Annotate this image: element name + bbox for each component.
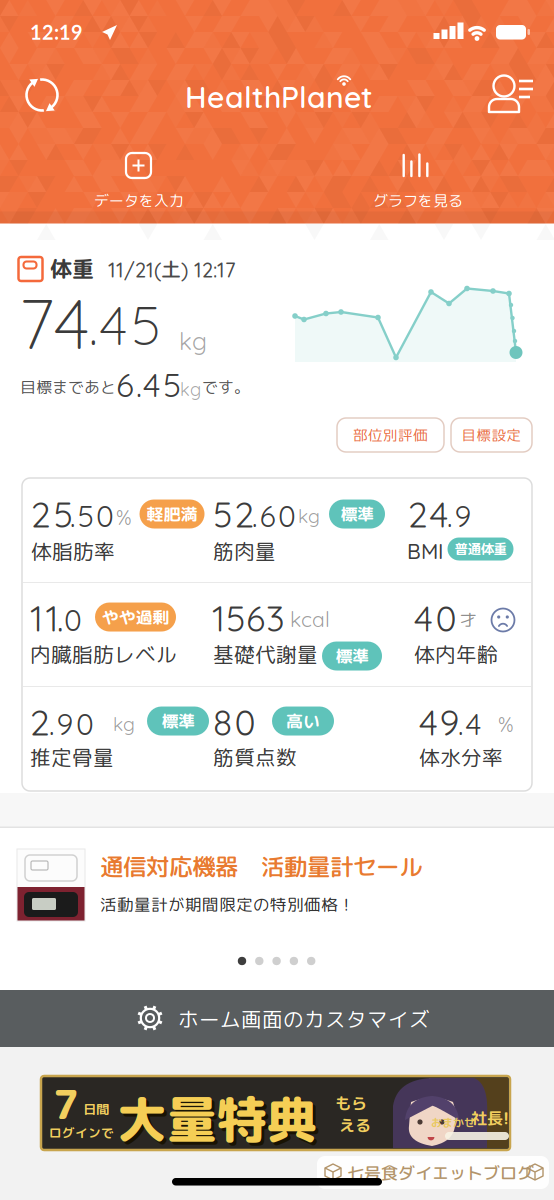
staticText: 推定骨量 bbox=[30, 743, 114, 772]
staticText: 11/21(土) 12:17 bbox=[108, 255, 236, 283]
staticText: 標準 bbox=[161, 709, 195, 733]
staticText: % bbox=[498, 712, 514, 737]
button[interactable]: 目標設定 bbox=[451, 418, 532, 452]
staticText: 1563 bbox=[212, 596, 285, 640]
staticText: kg bbox=[113, 712, 135, 736]
staticText: もら bbox=[335, 1092, 367, 1114]
staticText: 大量特典 bbox=[117, 1084, 317, 1154]
staticText: 軽肥満 bbox=[146, 502, 197, 526]
staticText: 活動量計が期間限定の特別価格！ bbox=[100, 893, 355, 916]
staticText: 通信対応機器 活動量計セール bbox=[100, 850, 422, 883]
staticText: 74 bbox=[19, 279, 89, 366]
button[interactable]: ホーム画面のカスタマイズ bbox=[0, 990, 554, 1047]
staticText: 高い bbox=[286, 709, 320, 733]
button[interactable]: 更新 bbox=[20, 73, 64, 117]
staticText: ログインで bbox=[49, 1124, 114, 1141]
staticText: グラフを見る bbox=[373, 190, 463, 211]
staticText: 筋肉量 bbox=[213, 537, 276, 566]
staticText: % bbox=[116, 505, 132, 530]
staticText: 52 bbox=[213, 492, 254, 536]
staticText: 24 bbox=[408, 492, 448, 536]
staticText: やや過剰 bbox=[101, 605, 169, 629]
staticText: 目標まであと bbox=[20, 376, 116, 398]
staticText: 6.45 bbox=[116, 364, 181, 405]
staticText: 内臓脂肪レベル bbox=[30, 640, 177, 669]
staticText: 普通体重 bbox=[454, 540, 506, 558]
staticText: .9 bbox=[447, 497, 471, 534]
button[interactable]: おまかせ bbox=[41, 1076, 510, 1150]
staticText: 25 bbox=[31, 492, 72, 536]
staticText: kg bbox=[298, 504, 320, 528]
button[interactable]: グラフを見る bbox=[277, 129, 554, 223]
staticText: kg bbox=[179, 326, 207, 356]
button[interactable]: 部位別評価 bbox=[337, 418, 444, 452]
staticText: 七号食ダイエットブログ bbox=[347, 1161, 534, 1185]
staticText: BMI bbox=[407, 538, 443, 564]
staticText: おまかせ bbox=[431, 1115, 475, 1130]
button[interactable]: 通信対応機器 活動量計セール bbox=[0, 840, 554, 932]
staticText: 49 bbox=[419, 700, 459, 744]
staticText: .50 bbox=[70, 497, 114, 534]
staticText: 標準 bbox=[335, 644, 369, 668]
staticText: 体内年齢 bbox=[414, 640, 498, 669]
staticText: 40 bbox=[414, 596, 456, 640]
staticText: 部位別評価 bbox=[353, 425, 428, 445]
staticText: . bbox=[57, 596, 63, 640]
staticText: 体脂肪率 bbox=[31, 537, 115, 566]
staticText: 筋質点数 bbox=[213, 743, 297, 772]
staticText: HealthPlanet bbox=[185, 78, 373, 115]
staticText: 日間 bbox=[83, 1100, 109, 1118]
staticText: kcal bbox=[290, 606, 330, 632]
button[interactable]: アカウント bbox=[486, 68, 534, 114]
staticText: える bbox=[339, 1114, 371, 1136]
staticText: 7 bbox=[53, 1076, 79, 1132]
staticText: データを入力 bbox=[94, 190, 184, 211]
staticText: 標準 bbox=[340, 502, 374, 526]
staticText: 大量特典 bbox=[120, 1087, 320, 1157]
staticText: 才 bbox=[460, 608, 477, 631]
staticText: .4 bbox=[458, 705, 481, 742]
staticText: 12:19 bbox=[30, 20, 83, 44]
staticText: .60 bbox=[252, 497, 296, 534]
staticText: kg bbox=[180, 378, 201, 400]
staticText: 2 bbox=[30, 700, 50, 744]
staticText: 社長! bbox=[471, 1107, 509, 1129]
staticText: です。 bbox=[202, 376, 250, 398]
staticText: 0 bbox=[64, 601, 82, 638]
staticText: 体水分率 bbox=[419, 743, 503, 772]
staticText: 体重 bbox=[50, 253, 94, 284]
staticText: 基礎代謝量 bbox=[213, 640, 318, 669]
staticText: 目標設定 bbox=[461, 425, 521, 445]
button[interactable]: データを入力 bbox=[0, 129, 277, 223]
staticText: .90 bbox=[49, 705, 94, 742]
staticText: ホーム画面のカスタマイズ bbox=[178, 1005, 430, 1034]
staticText: .45 bbox=[89, 290, 160, 359]
staticText: 11 bbox=[30, 596, 58, 640]
staticText: 80 bbox=[213, 700, 255, 744]
